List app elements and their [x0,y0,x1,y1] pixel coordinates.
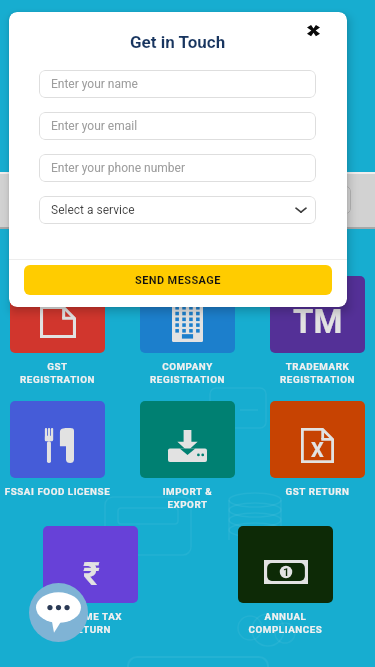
staticText: GST REGISTRATION [0,361,120,386]
button[interactable]: TM [270,276,365,353]
button[interactable]: SEND MESSAGE [24,265,332,295]
staticText: TRADEMARK REGISTRATION [255,361,375,386]
staticText: Enter your phone number [51,161,185,175]
staticText: FSSAI FOOD LICENSE [0,486,120,497]
staticText: Select a service [51,203,135,217]
staticText: INCOME TAX RETURN [28,611,153,636]
button[interactable]: Enter your name [39,70,316,98]
button[interactable]: 1 [238,526,333,603]
staticText: GST RETURN [255,486,375,497]
button[interactable] [140,401,235,478]
staticText: TM [293,302,343,341]
staticText: COMPANY REGISTRATION [125,361,250,386]
staticText: Enter your email [51,119,138,133]
button[interactable] [10,401,105,478]
staticText: X [311,438,324,461]
button[interactable]: Select a service [39,196,316,224]
button[interactable]: ₹ [43,526,138,603]
button[interactable] [10,276,105,353]
staticText: ANNUAL COMPLIANCES [223,611,348,636]
staticText: ₹ [83,555,100,585]
button[interactable]: X [270,401,365,478]
button[interactable]: Chat [29,583,88,642]
staticText: IMPORT & EXPORT [125,486,250,511]
staticText: Get in Touch [130,32,226,52]
staticText: SEND MESSAGE [135,274,221,287]
button[interactable]: Close [299,17,327,45]
button[interactable]: Enter your phone number [39,154,316,182]
staticText: Enter your name [51,77,138,91]
button[interactable]: Enter your email [39,112,316,140]
staticText: 1 [283,566,290,579]
button[interactable] [140,276,235,353]
